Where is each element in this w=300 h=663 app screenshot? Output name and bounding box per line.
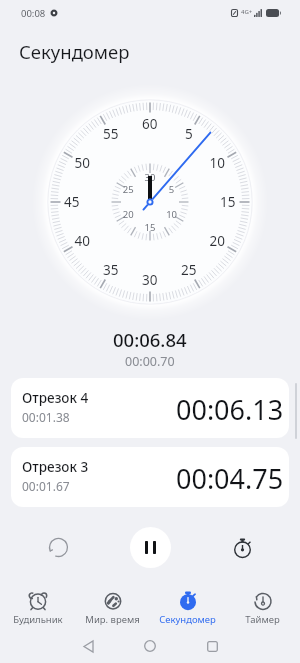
button[interactable]: Отрезок 3 (11, 447, 289, 507)
staticText: 00:06.84 (113, 327, 187, 352)
staticText: Секундомер (159, 613, 216, 626)
button[interactable]: Будильник (0, 583, 75, 628)
staticText: 00:06.13 (176, 391, 284, 428)
staticText: Будильник (13, 613, 63, 626)
staticText: Мир. время (85, 613, 140, 626)
staticText: 00:01.38 (22, 409, 70, 425)
button[interactable]: Таймер (225, 583, 300, 628)
button[interactable]: Главный экран (134, 630, 166, 662)
staticText: 4G+ (241, 8, 253, 16)
button[interactable]: Отрезок (224, 529, 260, 565)
staticText: 00:04.75 (176, 460, 284, 497)
staticText: Секундомер (19, 39, 130, 64)
button[interactable]: Назад (72, 630, 104, 662)
button[interactable]: Недавние (196, 630, 228, 662)
staticText: Таймер (245, 613, 280, 626)
staticText: 00:01.67 (22, 478, 70, 494)
button[interactable]: Пауза (130, 527, 171, 568)
staticText: Отрезок 4 (22, 389, 89, 407)
button[interactable]: Отрезок 4 (11, 378, 289, 438)
staticText: 00:00.70 (125, 353, 175, 370)
staticText: 00:08 (21, 7, 46, 20)
staticText: Отрезок 3 (22, 458, 89, 476)
button[interactable]: Секундомер (150, 583, 225, 628)
button[interactable]: Мир. время (75, 583, 150, 628)
button[interactable]: Сбросить (40, 529, 76, 565)
